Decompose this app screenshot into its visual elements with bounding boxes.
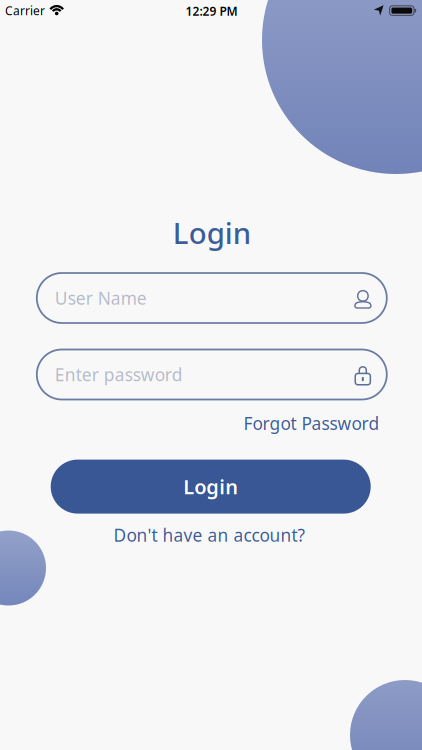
button[interactable]: Login [51, 460, 371, 514]
staticText: Carrier [5, 3, 45, 19]
button[interactable]: Don't have an account? [113, 523, 305, 546]
staticText: Login [173, 213, 251, 252]
button[interactable]: User Name [37, 273, 387, 323]
button[interactable]: Enter password [37, 349, 387, 399]
staticText: Forgot Password [243, 412, 379, 435]
button[interactable]: Forgot Password [243, 412, 379, 435]
staticText: 12:29 PM [185, 3, 237, 19]
staticText: Enter password [55, 363, 183, 386]
staticText: Login [183, 473, 238, 500]
staticText: Don't have an account? [113, 523, 305, 546]
staticText: User Name [55, 286, 147, 309]
